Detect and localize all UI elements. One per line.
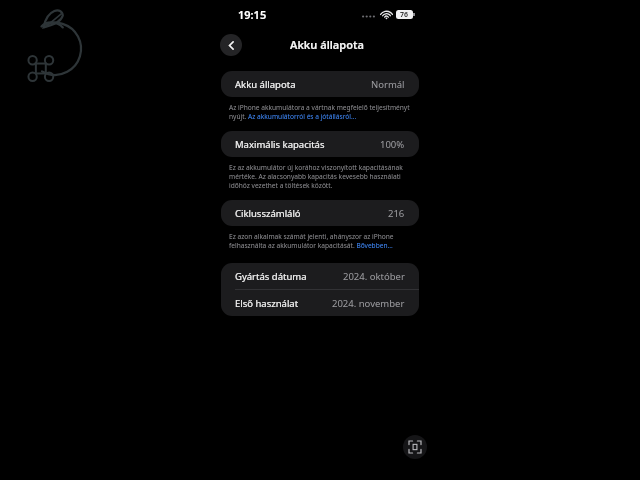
staticText: Ciklusszámláló <box>235 207 301 220</box>
staticText: 19:15 <box>238 7 267 22</box>
button[interactable]: Első használat <box>221 290 419 316</box>
staticText: 100% <box>380 138 405 151</box>
staticText: Ez azon alkalmak számát jelenti, ahánysz… <box>229 232 414 250</box>
staticText: Ez az akkumulátor új korához viszonyítot… <box>229 163 414 190</box>
staticText: Gyártás dátuma <box>235 270 307 283</box>
staticText: Akku állapota <box>235 78 296 91</box>
button[interactable]: Akku állapota <box>221 71 419 97</box>
staticText: Akku állapota <box>290 37 364 52</box>
staticText: Első használat <box>235 297 299 310</box>
staticText: 76 <box>400 10 409 19</box>
staticText: 2024. november <box>332 297 405 310</box>
staticText: 2024. október <box>343 270 405 283</box>
button[interactable]: Maximális kapacitás <box>221 131 419 157</box>
staticText: Normál <box>371 78 405 91</box>
button[interactable]: Ciklusszámláló <box>221 200 419 226</box>
staticText: 216 <box>388 207 405 220</box>
staticText: Maximális kapacitás <box>235 138 325 151</box>
button[interactable]: Gyártás dátuma <box>221 263 419 289</box>
staticText: Az iPhone akkumulátora a vártnak megfele… <box>229 103 414 121</box>
button[interactable]: Képernyőkép beolvasása <box>403 435 427 459</box>
button[interactable]: Vissza <box>220 34 242 56</box>
